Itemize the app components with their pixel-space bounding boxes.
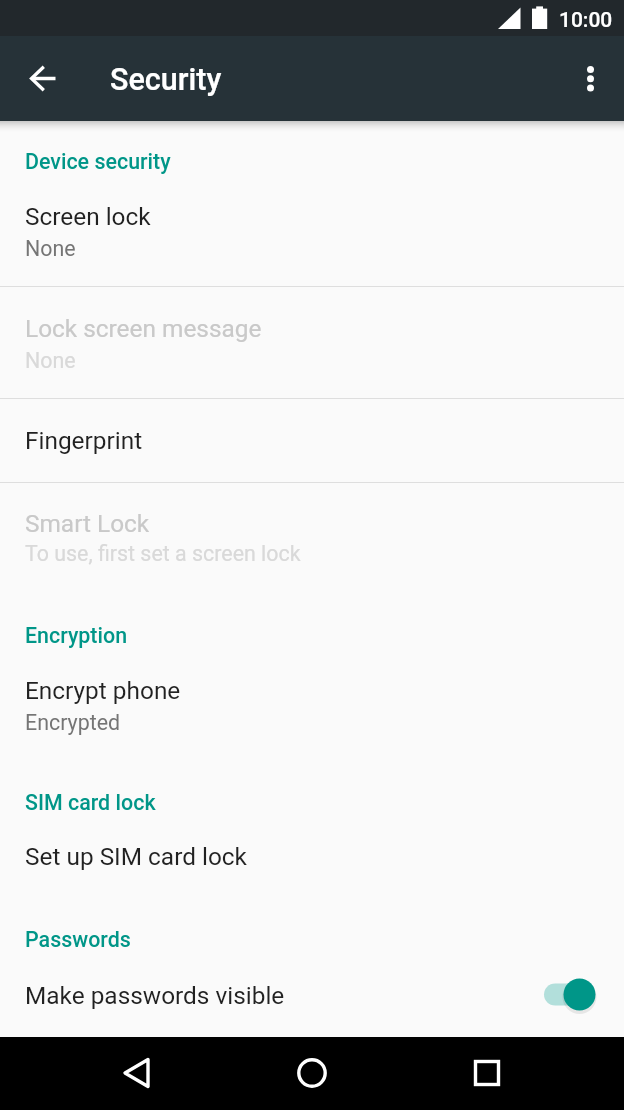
staticText: Set up SIM card lock [25,842,247,871]
button[interactable]: Fingerprint [0,399,624,482]
button[interactable]: Lock screen message [0,287,624,398]
staticText: Screen lock [25,202,151,231]
staticText: Security [110,62,222,98]
staticText: Device security [25,149,171,174]
staticText: Encrypted [25,710,121,735]
button[interactable]: Screen lock [0,186,624,286]
button[interactable]: Make passwords visible [0,962,624,1036]
staticText: None [25,236,76,261]
button[interactable]: Home [282,1043,342,1103]
staticText: Fingerprint [25,426,143,455]
button[interactable]: Recent apps [457,1043,517,1103]
button[interactable]: Back [107,1043,167,1103]
staticText: To use, first set a screen lock [25,541,301,566]
staticText: 10:00 [559,8,613,33]
button[interactable]: More options [562,50,619,107]
staticText: None [25,348,76,373]
staticText: Encryption [25,623,128,648]
button[interactable]: Navigate up [14,50,71,107]
staticText: Smart Lock [25,509,150,538]
button[interactable]: Encrypt phone [0,660,624,752]
staticText: SIM card lock [25,790,156,815]
staticText: Lock screen message [25,314,262,343]
staticText: Passwords [25,927,131,952]
button[interactable]: Smart Lock [0,483,624,585]
button[interactable]: Set up SIM card lock [0,826,624,890]
staticText: Encrypt phone [25,676,181,705]
staticText: Make passwords visible [25,981,285,1010]
button[interactable]: Make passwords visible [536,972,598,1018]
